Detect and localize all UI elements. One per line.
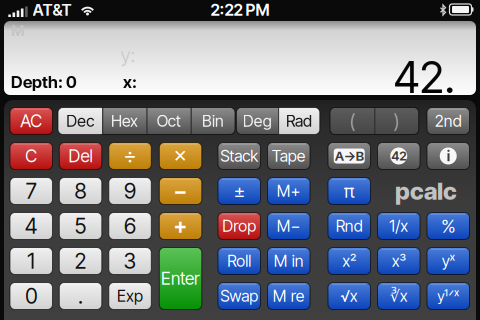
staticText: AT&T bbox=[32, 0, 71, 20]
staticText: y: bbox=[120, 43, 135, 67]
staticText: M− bbox=[277, 216, 301, 236]
staticText: 6 bbox=[124, 213, 136, 239]
staticText: Depth: 0 bbox=[11, 72, 77, 92]
button[interactable]: ) bbox=[374, 107, 419, 134]
button[interactable]: 1/x bbox=[377, 212, 420, 239]
staticText: x: bbox=[123, 72, 137, 92]
staticText: Drop bbox=[222, 216, 256, 236]
button[interactable]: M− bbox=[267, 212, 310, 239]
staticText: A→B bbox=[335, 148, 364, 164]
button[interactable]: C bbox=[10, 142, 52, 169]
button[interactable]: Bin bbox=[191, 107, 235, 134]
button[interactable]: y¹ᐟˣ bbox=[427, 282, 469, 309]
staticText: Enter bbox=[161, 268, 200, 289]
staticText: 7 bbox=[26, 178, 37, 204]
button[interactable]: ÷ bbox=[109, 142, 151, 169]
button[interactable]: M in bbox=[267, 247, 310, 274]
staticText: + bbox=[174, 213, 188, 239]
staticText: 9 bbox=[124, 178, 136, 204]
button[interactable]: % bbox=[427, 212, 469, 239]
staticText: i bbox=[447, 147, 450, 165]
button[interactable]: Swap bbox=[218, 282, 260, 309]
staticText: − bbox=[174, 178, 188, 204]
staticText: yˣ bbox=[442, 251, 455, 271]
button[interactable]: ✕ bbox=[159, 142, 202, 169]
button[interactable]: yˣ bbox=[427, 247, 469, 274]
staticText: Exp bbox=[117, 286, 143, 306]
button[interactable]: Info bbox=[427, 142, 469, 169]
button[interactable]: 6 bbox=[109, 212, 151, 239]
button[interactable]: 5 bbox=[59, 212, 102, 239]
staticText: 4 bbox=[25, 213, 38, 239]
button[interactable]: Hex bbox=[102, 107, 146, 134]
staticText: 1 bbox=[27, 248, 35, 274]
button[interactable]: Rnd bbox=[328, 212, 370, 239]
button[interactable]: Stack bbox=[218, 142, 260, 169]
button[interactable]: + bbox=[159, 212, 202, 239]
button[interactable]: Deg bbox=[236, 107, 278, 134]
button[interactable]: Rad bbox=[278, 107, 320, 134]
button[interactable]: Dec bbox=[58, 107, 102, 134]
staticText: Bin bbox=[202, 111, 224, 131]
staticText: ✕ bbox=[173, 146, 188, 166]
staticText: Stack bbox=[220, 146, 258, 166]
button[interactable]: Oct bbox=[146, 107, 191, 134]
button[interactable]: 1 bbox=[10, 247, 52, 274]
button[interactable]: Del bbox=[59, 142, 102, 169]
staticText: ) bbox=[393, 109, 399, 133]
staticText: Hex bbox=[111, 111, 138, 131]
staticText: AC bbox=[20, 110, 42, 131]
button[interactable]: Drop bbox=[218, 212, 260, 239]
button[interactable]: x² bbox=[328, 247, 370, 274]
staticText: 2 bbox=[74, 248, 86, 274]
button[interactable]: Enter bbox=[159, 247, 202, 309]
staticText: ÷ bbox=[124, 143, 137, 169]
button[interactable]: M+ bbox=[267, 177, 310, 204]
staticText: . bbox=[78, 283, 83, 309]
button[interactable]: − bbox=[159, 177, 202, 204]
staticText: 5 bbox=[74, 213, 86, 239]
staticText: Oct bbox=[157, 111, 181, 131]
staticText: % bbox=[441, 215, 455, 237]
staticText: ( bbox=[349, 109, 355, 133]
button[interactable]: ( bbox=[330, 107, 374, 134]
button[interactable]: 8 bbox=[59, 177, 102, 204]
button[interactable]: Exp bbox=[109, 282, 151, 309]
staticText: Tape bbox=[272, 146, 306, 166]
button[interactable]: 3 bbox=[109, 247, 151, 274]
button[interactable]: 2nd bbox=[427, 107, 469, 134]
button[interactable]: 9 bbox=[109, 177, 151, 204]
staticText: M bbox=[11, 22, 24, 40]
staticText: π bbox=[344, 180, 355, 202]
staticText: M re bbox=[273, 286, 305, 306]
staticText: x² bbox=[342, 251, 356, 271]
staticText: 1/x bbox=[389, 216, 408, 236]
staticText: y¹ᐟˣ bbox=[437, 287, 459, 305]
staticText: √x bbox=[341, 286, 358, 306]
button[interactable]: π bbox=[328, 177, 370, 204]
staticText: C bbox=[25, 145, 37, 166]
button[interactable]: M re bbox=[267, 282, 310, 309]
button[interactable]: A to B bbox=[328, 142, 370, 169]
button[interactable]: 2 bbox=[59, 247, 102, 274]
button[interactable]: . bbox=[59, 282, 102, 309]
button[interactable]: ∛x bbox=[377, 282, 420, 309]
button[interactable]: x³ bbox=[377, 247, 420, 274]
button[interactable]: 0 bbox=[10, 282, 52, 309]
button[interactable]: 4 bbox=[10, 212, 52, 239]
staticText: Swap bbox=[220, 286, 258, 306]
staticText: 8 bbox=[74, 178, 86, 204]
button[interactable]: √x bbox=[328, 282, 370, 309]
staticText: 3 bbox=[124, 248, 137, 274]
button[interactable]: AC bbox=[10, 107, 52, 134]
button[interactable]: Tape bbox=[267, 142, 310, 169]
button[interactable]: ± bbox=[218, 177, 260, 204]
button[interactable]: Constants bbox=[377, 142, 420, 169]
staticText: 2nd bbox=[435, 111, 462, 131]
button[interactable]: Roll bbox=[218, 247, 260, 274]
button[interactable]: 7 bbox=[10, 177, 52, 204]
staticText: Rad bbox=[286, 111, 312, 131]
staticText: M+ bbox=[277, 181, 301, 201]
staticText: ± bbox=[234, 180, 245, 202]
staticText: Del bbox=[68, 145, 92, 166]
